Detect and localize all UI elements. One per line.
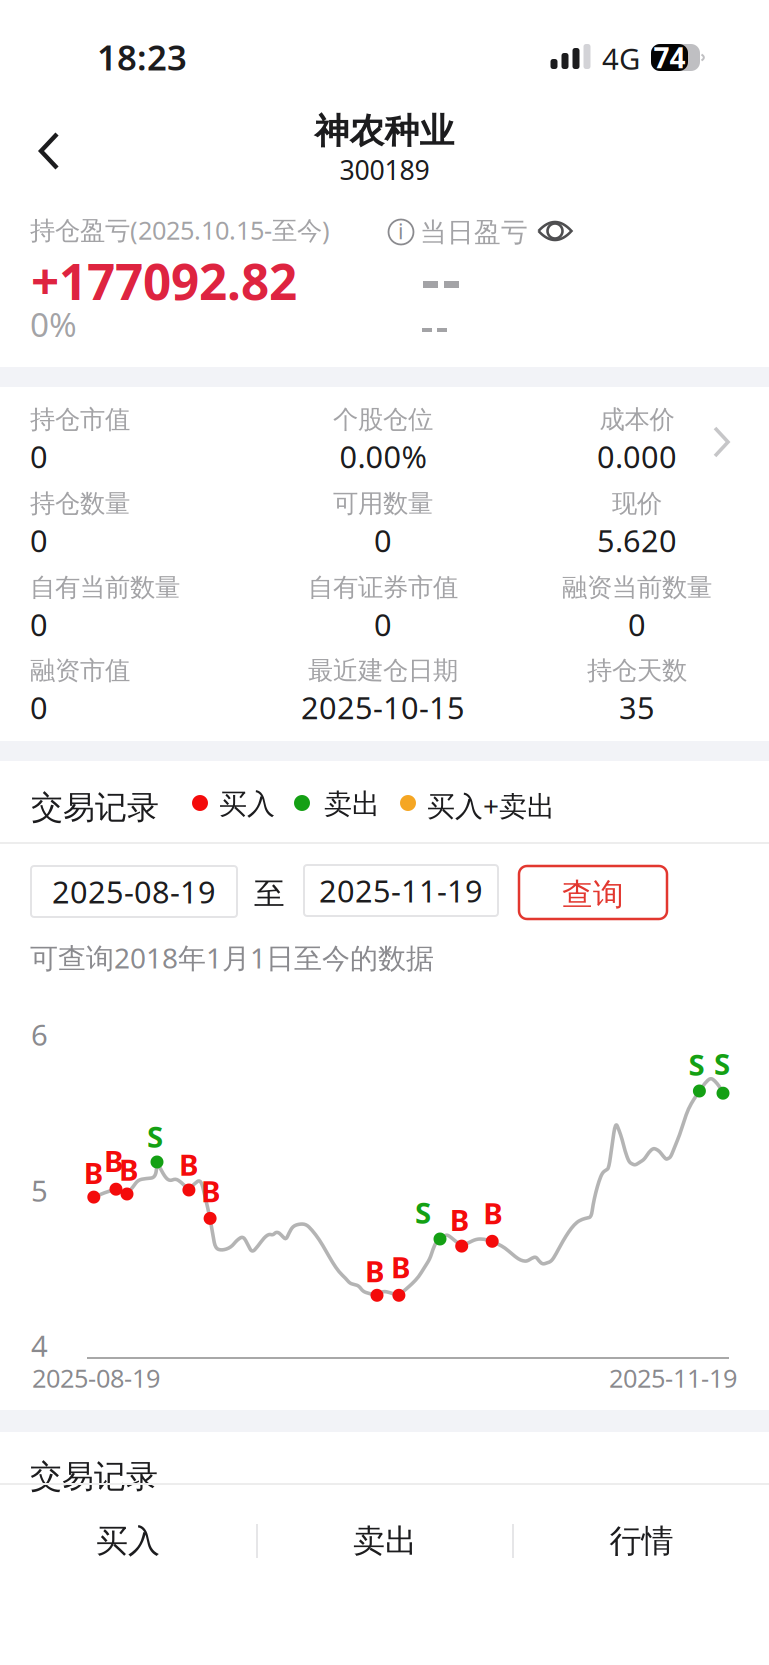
staticText: S [714, 1044, 730, 1083]
staticText: 2025-08-19 [32, 1361, 160, 1395]
staticText: 自有证券市值 [308, 572, 458, 603]
staticText: B [104, 1141, 124, 1180]
staticText: 持仓数量 [30, 488, 130, 519]
staticText: 成本价 [599, 404, 674, 435]
staticText: 0 [374, 520, 392, 561]
staticText: 买入+卖出 [427, 787, 555, 824]
staticText: B [391, 1247, 411, 1286]
button[interactable]: 买入 [0, 1491, 256, 1591]
staticText: S [415, 1193, 431, 1232]
staticText: 0 [628, 604, 646, 645]
staticText: 2025-11-19 [609, 1361, 737, 1395]
staticText: 0.000 [597, 436, 677, 477]
staticText: 自有当前数量 [30, 572, 180, 603]
staticText: 300189 [339, 152, 429, 187]
staticText: B [483, 1193, 503, 1232]
staticText: 买入 [219, 787, 275, 821]
staticText: 神农种业 [314, 110, 454, 153]
staticText: 买入 [96, 1521, 160, 1561]
staticText: 持仓盈亏(2025.10.15-至今) [30, 213, 330, 247]
staticText: 交易记录 [30, 1457, 158, 1496]
staticText: 行情 [609, 1521, 673, 1561]
staticText: B [179, 1145, 199, 1184]
staticText: 4 [31, 1326, 48, 1365]
staticText: 融资市值 [30, 655, 130, 686]
staticText: 0% [30, 302, 77, 346]
staticText: 个股仓位 [333, 404, 433, 435]
staticText: 18:23 [97, 34, 187, 80]
button[interactable]: 行情 [514, 1491, 769, 1591]
staticText: 5 [31, 1171, 48, 1210]
staticText: 至 [254, 875, 285, 913]
staticText: S [688, 1045, 704, 1084]
staticText: 当日盈亏 [420, 216, 528, 249]
staticText: 0 [374, 604, 392, 645]
staticText: B [84, 1153, 104, 1192]
staticText: 35 [619, 687, 655, 728]
staticText: 0.00% [339, 436, 426, 477]
staticText: 6 [31, 1015, 48, 1054]
staticText: 卖出 [353, 1521, 417, 1561]
staticText: 可查询2018年1月1日至今的数据 [30, 939, 434, 976]
staticText: 0 [30, 436, 48, 477]
staticText: B [450, 1200, 470, 1239]
staticText: 4G [602, 39, 640, 78]
staticText: 0 [30, 520, 48, 561]
staticText: B [119, 1150, 139, 1189]
staticText: 5.620 [597, 520, 677, 561]
staticText: 2025-10-15 [301, 687, 465, 728]
staticText: +177092.82 [31, 248, 297, 313]
staticText: 卖出 [324, 787, 380, 821]
staticText: i [398, 217, 404, 245]
staticText: 0 [30, 604, 48, 645]
staticText: 持仓天数 [587, 655, 687, 686]
staticText: 2025-11-19 [319, 870, 483, 911]
staticText: 查询 [562, 876, 624, 913]
staticText: 持仓市值 [30, 404, 130, 435]
staticText: 2025-08-19 [52, 871, 216, 912]
staticText: 现价 [612, 488, 662, 519]
staticText: B [201, 1171, 221, 1210]
button[interactable]: Back [23, 119, 77, 183]
button[interactable]: 2025-08-19 [31, 866, 237, 917]
staticText: 交易记录 [31, 788, 159, 827]
button[interactable]: 2025-11-19 [304, 865, 498, 916]
button[interactable]: 查询 [519, 866, 667, 919]
staticText: B [365, 1251, 385, 1290]
staticText: 可用数量 [333, 488, 433, 519]
staticText: S [147, 1117, 163, 1156]
staticText: 74 [653, 39, 685, 76]
staticText: 最近建仓日期 [308, 655, 458, 686]
staticText: 0 [30, 687, 48, 728]
staticText: 融资当前数量 [562, 572, 712, 603]
button[interactable]: 卖出 [258, 1491, 512, 1591]
